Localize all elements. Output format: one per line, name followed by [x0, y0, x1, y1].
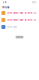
staticText: 100% [31, 1, 36, 4]
staticText: Lorem ipsum dolor sit amet consecte [7, 19, 38, 21]
staticText: 9:41 [2, 1, 6, 4]
button[interactable]: Lorem ipsum dolor sit amet consec [0, 9, 39, 16]
staticText: Lorem ipsu [7, 26, 17, 28]
button[interactable]: Lorem ipsu [0, 23, 39, 30]
staticText: Lorem ipsum dolor sit amet consec [7, 12, 38, 14]
staticText: Today [2, 6, 9, 9]
button[interactable]: Lorem ipsum dolor sit amet consecte [0, 16, 39, 23]
